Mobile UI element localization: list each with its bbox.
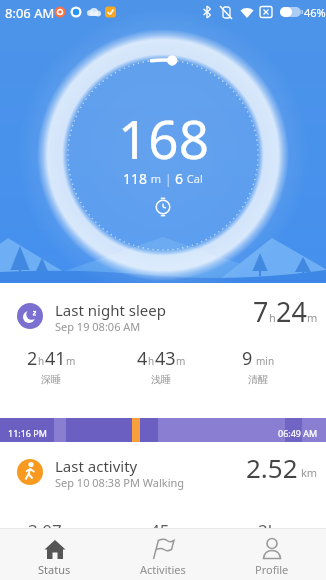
staticText: h (148, 354, 155, 368)
button[interactable]: Activities (109, 528, 217, 580)
staticText: 9 (242, 346, 253, 371)
staticText: m (148, 171, 165, 186)
staticText: | (165, 171, 175, 187)
button[interactable]: 8:06 AM (0, 0, 326, 283)
staticText: 46% (304, 5, 326, 20)
staticText: h (38, 354, 45, 368)
staticText: 06:49 AM (278, 427, 318, 439)
staticText: 8:06 AM (5, 4, 55, 22)
staticText: 2.52 (246, 450, 298, 485)
staticText: 24 (276, 293, 307, 330)
staticText: Last night sleep (55, 300, 166, 320)
staticText: 11:16 PM (8, 427, 47, 439)
staticText: 2h (258, 519, 279, 542)
staticText: m (66, 354, 76, 368)
staticText: 118 (123, 169, 148, 188)
staticText: Last activity (55, 456, 138, 476)
staticText: Cal (184, 171, 203, 186)
staticText: Status (38, 562, 71, 577)
staticText: min (256, 354, 275, 368)
staticText: km (301, 465, 318, 480)
staticText: Activities (140, 562, 186, 577)
button[interactable]: Status (0, 528, 108, 580)
staticText: 45 (150, 519, 170, 542)
staticText: 深睡 (41, 373, 61, 386)
staticText: 2 (27, 346, 38, 371)
staticText: Sep 10 08:38 PM Walking (55, 475, 185, 490)
staticText: h (269, 310, 276, 325)
button[interactable]: Last night sleep (0, 283, 326, 443)
staticText: 6 (175, 169, 184, 188)
staticText: Sep 19 08:06 AM (55, 319, 141, 334)
staticText: 4 (137, 346, 148, 371)
button[interactable]: Profile (218, 528, 326, 580)
staticText: m (176, 354, 186, 368)
staticText: 清醒 (248, 373, 268, 386)
staticText: 41 (45, 346, 66, 371)
staticText: 43 (155, 346, 176, 371)
staticText: 7 (253, 293, 269, 330)
staticText: 浅睡 (151, 373, 171, 386)
staticText: Profile (255, 562, 289, 577)
staticText: m (307, 310, 318, 325)
staticText: 3.07 (28, 519, 62, 542)
staticText: 168 (118, 102, 209, 174)
button[interactable]: Last activity (0, 443, 326, 528)
